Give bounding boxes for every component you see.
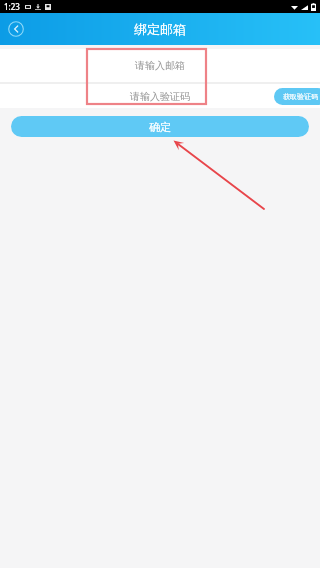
staticText: 绑定邮箱 (134, 21, 186, 37)
button[interactable]: 请输入验证码 (0, 84, 320, 108)
staticText: 获取验证码 (283, 92, 318, 101)
button[interactable]: 获取验证码 (274, 88, 320, 105)
staticText: 请输入邮箱 (135, 59, 185, 72)
staticText: 请输入验证码 (130, 90, 190, 103)
button[interactable]: Back (6, 19, 26, 39)
button[interactable]: 确定 (11, 116, 309, 137)
button[interactable]: 请输入邮箱 (0, 49, 320, 82)
staticText: 1:23 (4, 1, 20, 12)
staticText: 确定 (149, 120, 171, 134)
